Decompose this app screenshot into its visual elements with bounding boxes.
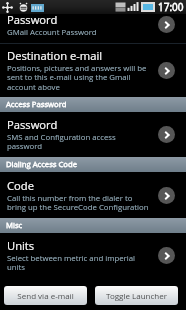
- staticText: SMS and Configuration access password: [7, 132, 150, 152]
- staticText: Call this number from the dialer to brin…: [7, 193, 150, 213]
- button[interactable]: Code: [0, 172, 186, 218]
- staticText: GMail Account Password: [7, 27, 97, 38]
- staticText: Password: [7, 14, 58, 27]
- staticText: Access Password: [6, 99, 67, 109]
- staticText: Misc: [6, 220, 23, 230]
- staticText: Code: [7, 178, 34, 193]
- button[interactable]: Password: [0, 112, 186, 157]
- staticText: Send via e-mail: [17, 290, 74, 301]
- button[interactable]: Units: [0, 233, 186, 278]
- button[interactable]: Open Password: [158, 126, 175, 143]
- button[interactable]: Open Password: [158, 16, 175, 33]
- button[interactable]: Open Units: [158, 247, 175, 264]
- staticText: Destination e-mail: [7, 48, 103, 63]
- staticText: Positions, pictures and answers will be …: [7, 63, 150, 93]
- button[interactable]: Open Code: [158, 187, 175, 204]
- button[interactable]: Toggle Launcher: [95, 286, 178, 305]
- button[interactable]: Send via e-mail: [4, 286, 87, 305]
- staticText: Password: [7, 117, 58, 132]
- staticText: Select between metric and imperial units: [7, 253, 150, 273]
- staticText: Toggle Launcher: [106, 290, 167, 301]
- staticText: Units: [7, 238, 35, 253]
- button[interactable]: Destination e-mail: [0, 44, 186, 97]
- staticText: Dialing Access Code: [6, 159, 77, 169]
- staticText: 17:00: [158, 0, 184, 14]
- button[interactable]: Open Destination e-mail: [158, 62, 175, 79]
- button[interactable]: Password: [0, 14, 186, 39]
